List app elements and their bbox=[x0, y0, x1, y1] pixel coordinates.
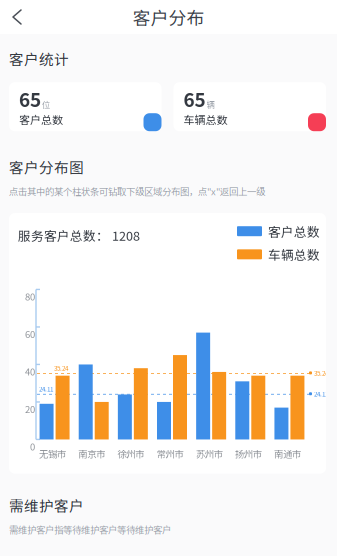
staticText: 徐州市 bbox=[117, 447, 144, 460]
staticText: 南京市 bbox=[78, 447, 105, 460]
staticText: 20 bbox=[25, 402, 35, 416]
staticText: 车辆总数 bbox=[183, 111, 227, 127]
staticText: 80 bbox=[25, 289, 35, 303]
button[interactable]: Back bbox=[0, 0, 42, 34]
staticText: 无锡市 bbox=[39, 447, 66, 460]
staticText: 客户分布 bbox=[132, 4, 204, 30]
staticText: 南通市 bbox=[274, 447, 301, 460]
staticText: 35.24 bbox=[314, 368, 328, 377]
button[interactable]: 65 bbox=[9, 82, 161, 131]
staticText: 65 bbox=[19, 85, 41, 112]
staticText: 扬州市 bbox=[235, 447, 262, 460]
staticText: 车辆总数 bbox=[268, 245, 320, 263]
staticText: 65 bbox=[183, 85, 205, 112]
staticText: 60 bbox=[25, 327, 35, 341]
staticText: 客户总数 bbox=[268, 222, 320, 240]
staticText: 常州市 bbox=[156, 447, 183, 460]
staticText: 40 bbox=[25, 364, 35, 378]
staticText: 辆 bbox=[206, 98, 214, 110]
staticText: 客户分布图 bbox=[9, 156, 84, 177]
staticText: 24.11 bbox=[314, 389, 328, 398]
staticText: 服务客户总数： 1208 bbox=[18, 226, 140, 244]
staticText: 24.11 bbox=[39, 384, 53, 393]
staticText: 点击其中的某个柱状条可钻取下级区域分布图，点"x"返回上一级 bbox=[9, 184, 265, 198]
staticText: 需维护客户指等待维护客户等待维护客户 bbox=[9, 523, 171, 536]
staticText: 位 bbox=[42, 98, 50, 110]
button[interactable]: 65 bbox=[173, 82, 326, 131]
staticText: 苏州市 bbox=[196, 447, 223, 460]
staticText: 客户统计 bbox=[9, 48, 69, 69]
staticText: 需维护客户 bbox=[9, 494, 84, 516]
staticText: 35.24 bbox=[54, 363, 68, 372]
staticText: 0 bbox=[30, 439, 35, 453]
staticText: 客户总数 bbox=[19, 111, 63, 127]
